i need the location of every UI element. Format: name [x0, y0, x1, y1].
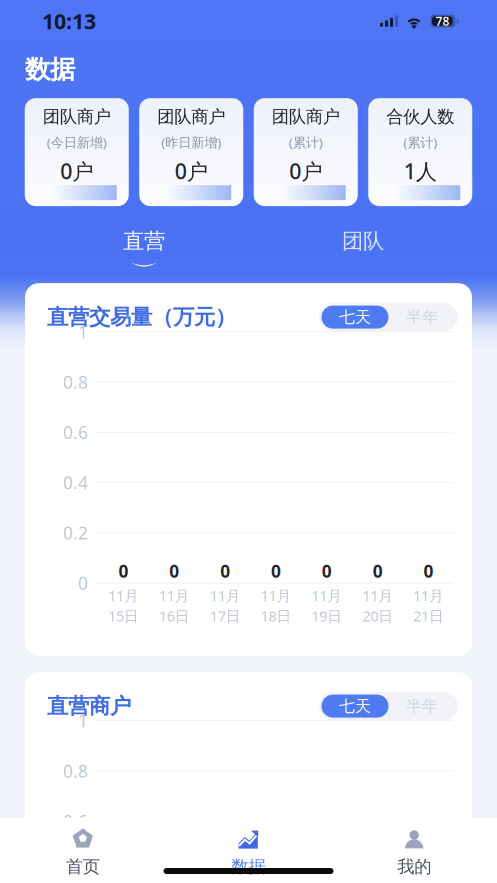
- staticText: 数据: [231, 856, 265, 877]
- staticText: 0.2: [63, 521, 88, 544]
- button[interactable]: 半年: [388, 306, 455, 329]
- staticText: 1: [78, 709, 88, 732]
- staticText: 直营: [123, 228, 165, 254]
- staticText: 0: [118, 560, 128, 583]
- staticText: 0: [373, 560, 383, 583]
- staticText: 数据: [25, 54, 75, 85]
- staticText: 0户: [289, 157, 322, 185]
- staticText: 团队商户: [157, 106, 225, 127]
- staticText: 半年: [406, 696, 438, 716]
- staticText: 七天: [339, 307, 371, 327]
- staticText: 0: [322, 560, 332, 583]
- staticText: 11月: [159, 586, 190, 605]
- staticText: (累计): [289, 133, 323, 151]
- staticText: 0.4: [63, 860, 88, 883]
- staticText: 0: [169, 560, 179, 583]
- staticText: 0.6: [63, 421, 88, 444]
- staticText: 直营商户: [47, 693, 131, 719]
- staticText: 团队商户: [272, 106, 340, 127]
- staticText: 11月: [210, 586, 241, 605]
- staticText: 团队: [342, 228, 384, 254]
- staticText: (累计): [403, 133, 437, 151]
- staticText: 0户: [175, 157, 208, 185]
- staticText: 20日: [362, 606, 393, 626]
- staticText: 0.8: [63, 759, 88, 782]
- staticText: 0: [271, 560, 281, 583]
- staticText: 11月: [311, 586, 342, 605]
- button[interactable]: 直营: [0, 228, 288, 266]
- button[interactable]: 团队商户: [139, 98, 243, 206]
- staticText: 七天: [339, 696, 371, 716]
- button[interactable]: 我的: [331, 818, 497, 883]
- staticText: 16日: [159, 606, 190, 626]
- staticText: 1: [78, 320, 88, 343]
- staticText: 15日: [108, 606, 139, 626]
- staticText: 78: [435, 13, 449, 29]
- staticText: 10:13: [42, 7, 96, 35]
- staticText: 11月: [413, 586, 444, 605]
- button[interactable]: 七天: [321, 695, 388, 718]
- staticText: 0: [78, 572, 88, 595]
- button[interactable]: 首页: [0, 818, 166, 883]
- staticText: 19日: [311, 606, 342, 626]
- staticText: 18日: [260, 606, 291, 626]
- button[interactable]: 七天: [321, 306, 388, 329]
- button[interactable]: 半年: [388, 695, 455, 718]
- staticText: 团队商户: [43, 106, 111, 127]
- staticText: (今日新增): [47, 133, 107, 151]
- staticText: 0.6: [63, 810, 88, 833]
- staticText: (昨日新增): [161, 133, 221, 151]
- staticText: 直营交易量（万元）: [47, 304, 236, 330]
- staticText: 21日: [413, 606, 444, 626]
- staticText: 11月: [362, 586, 393, 605]
- staticText: 11月: [260, 586, 291, 605]
- staticText: 0: [220, 560, 230, 583]
- staticText: 17日: [210, 606, 241, 626]
- button[interactable]: 数据: [166, 818, 331, 883]
- button[interactable]: 团队商户: [25, 98, 129, 206]
- staticText: 首页: [66, 856, 100, 877]
- staticText: 半年: [406, 307, 438, 327]
- button[interactable]: 合伙人数: [368, 98, 472, 206]
- staticText: 1人: [404, 157, 437, 185]
- staticText: 合伙人数: [386, 106, 454, 127]
- staticText: 0.8: [63, 370, 88, 393]
- button[interactable]: 团队: [288, 228, 438, 266]
- staticText: 0户: [60, 157, 93, 185]
- staticText: 0: [424, 560, 434, 583]
- staticText: 我的: [397, 856, 431, 877]
- button[interactable]: 团队商户: [254, 98, 358, 206]
- staticText: 0.4: [63, 471, 88, 494]
- staticText: 11月: [108, 586, 139, 605]
